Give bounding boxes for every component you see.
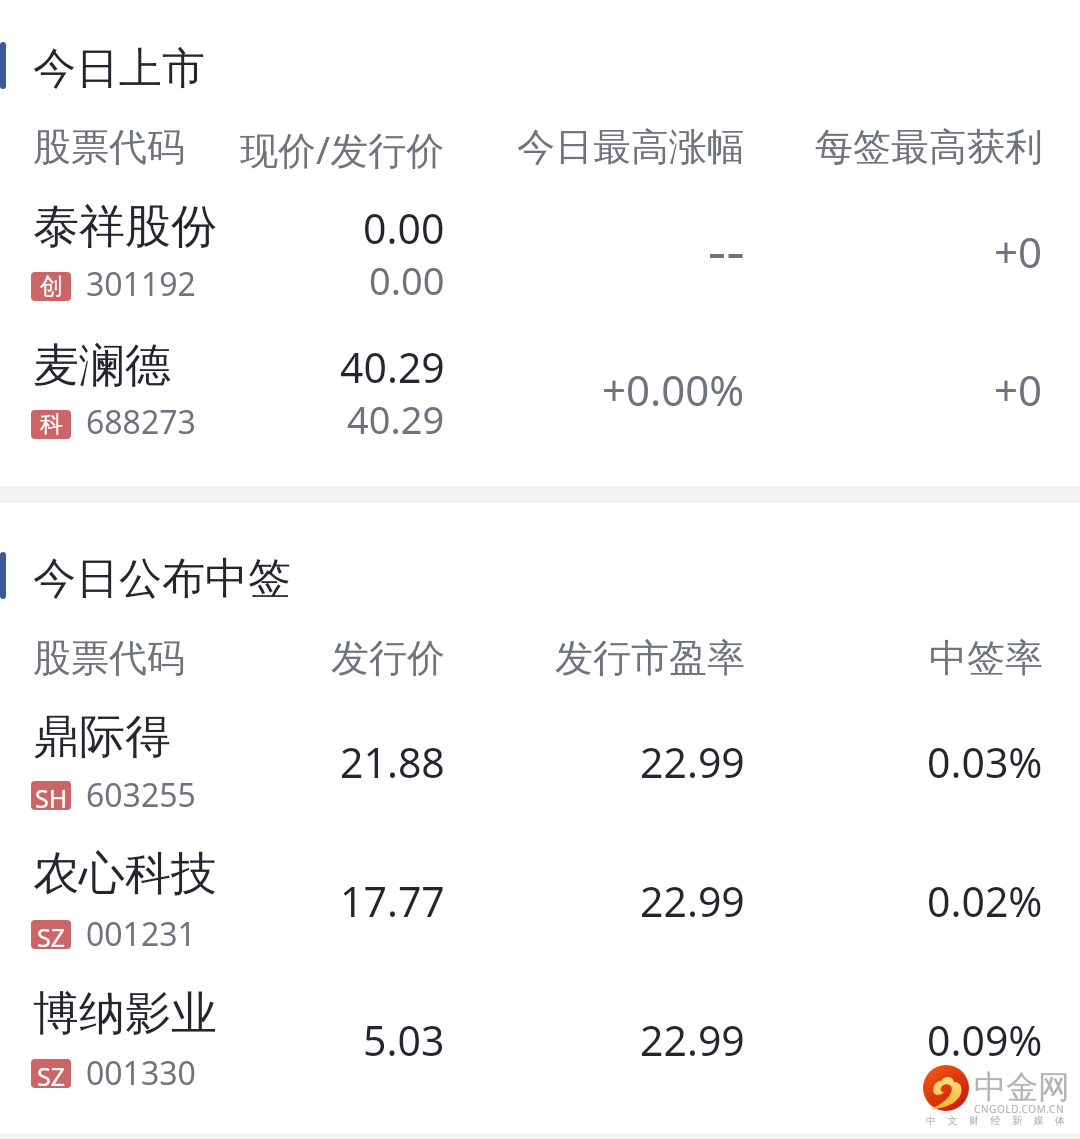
- staticText: 博纳影业: [33, 985, 217, 1043]
- staticText: 今日上市: [33, 42, 205, 96]
- staticText: CNGOLD.COM.CN: [974, 1102, 1065, 1116]
- button[interactable]: 农心科技: [0, 831, 1080, 970]
- staticText: 603255: [86, 773, 196, 817]
- staticText: 0.09%: [927, 1012, 1043, 1068]
- staticText: 股票代码: [33, 123, 185, 171]
- staticText: 22.99: [640, 734, 745, 790]
- button[interactable]: 麦澜德: [0, 319, 1080, 458]
- staticText: 001330: [86, 1051, 196, 1095]
- staticText: 17.77: [340, 873, 445, 929]
- staticText: 鼎际得: [33, 708, 171, 766]
- staticText: 301192: [86, 262, 196, 306]
- button[interactable]: 泰祥股份: [0, 180, 1080, 319]
- staticText: 发行价: [331, 634, 445, 682]
- staticText: SZ: [37, 920, 66, 949]
- staticText: 001231: [86, 912, 196, 956]
- staticText: 0.03%: [927, 734, 1043, 790]
- staticText: 中金网: [974, 1067, 1070, 1107]
- staticText: 21.88: [340, 734, 445, 790]
- staticText: 今日公布中签: [33, 552, 291, 606]
- staticText: 创: [40, 272, 63, 301]
- staticText: 40.29: [340, 339, 445, 395]
- staticText: 现价/发行价: [240, 123, 445, 175]
- button[interactable]: 博纳影业: [0, 970, 1080, 1109]
- staticText: 22.99: [640, 1012, 745, 1068]
- staticText: 每签最高获利: [815, 123, 1043, 171]
- staticText: +0.00%: [602, 361, 745, 418]
- staticText: +0: [994, 361, 1043, 418]
- staticText: 5.03: [363, 1012, 445, 1068]
- staticText: 发行市盈率: [555, 634, 745, 682]
- staticText: 今日最高涨幅: [517, 123, 745, 171]
- staticText: 0.00: [369, 254, 445, 306]
- staticText: 0.00: [363, 200, 445, 256]
- staticText: 农心科技: [33, 845, 217, 903]
- staticText: SH: [35, 781, 68, 810]
- staticText: 麦澜德: [33, 337, 171, 395]
- staticText: 688273: [86, 400, 196, 444]
- staticText: 泰祥股份: [33, 198, 217, 256]
- staticText: 科: [40, 410, 63, 439]
- staticText: SZ: [37, 1059, 66, 1088]
- staticText: +0: [994, 223, 1043, 280]
- button[interactable]: 鼎际得: [0, 692, 1080, 831]
- staticText: 22.99: [640, 873, 745, 929]
- staticText: 中签率: [929, 634, 1043, 682]
- staticText: 40.29: [347, 393, 445, 445]
- staticText: 中文财经新媒体: [926, 1114, 1077, 1127]
- other: CNGOLD logo: [923, 1065, 969, 1111]
- staticText: 股票代码: [33, 634, 185, 682]
- staticText: 0.02%: [927, 873, 1043, 929]
